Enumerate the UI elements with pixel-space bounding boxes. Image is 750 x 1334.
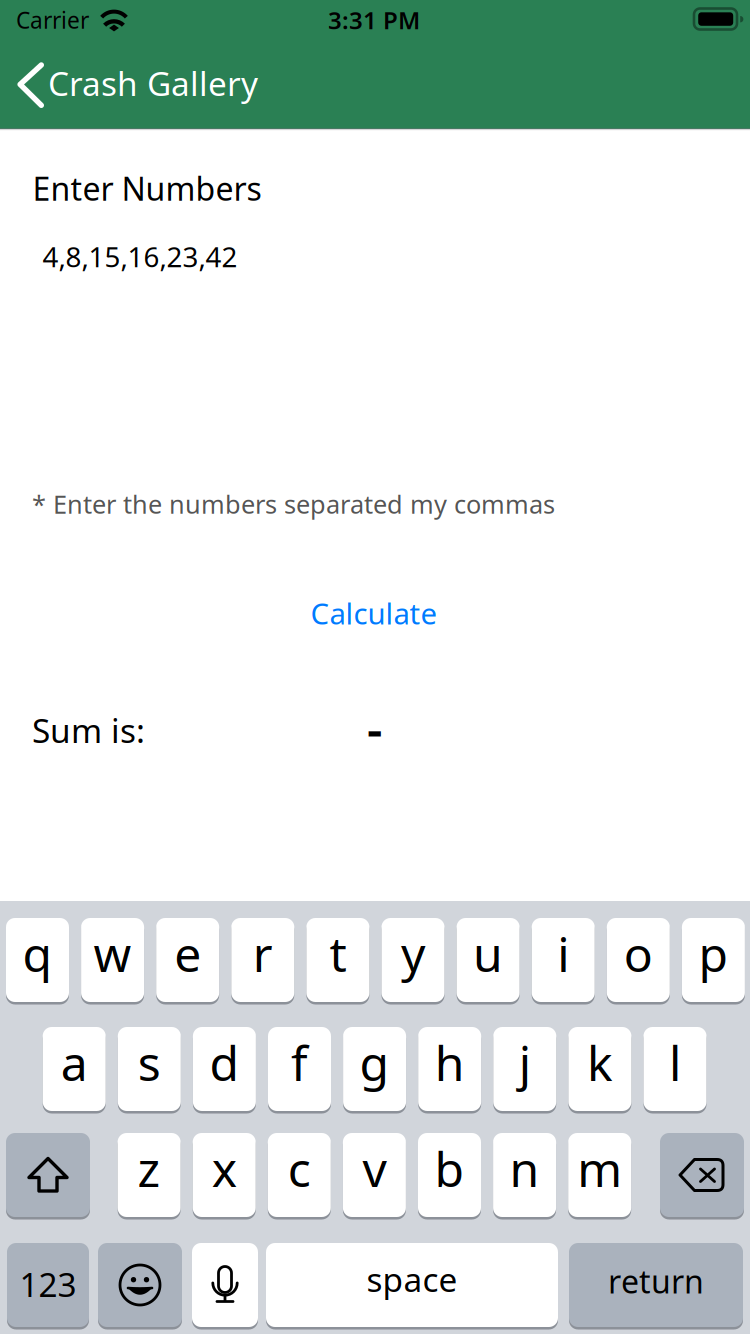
staticText: h	[435, 1031, 465, 1094]
staticText: c	[288, 1137, 311, 1200]
button[interactable]: Crash Gallery	[14, 52, 274, 116]
button[interactable]: g	[343, 1027, 406, 1111]
staticText: e	[174, 922, 201, 985]
button[interactable]: x	[193, 1133, 256, 1217]
staticText: Crash Gallery	[48, 61, 258, 105]
staticText: Sum is:	[32, 708, 145, 752]
button[interactable]: t	[306, 918, 369, 1002]
staticText: s	[138, 1031, 161, 1094]
staticText: -	[367, 697, 382, 761]
staticText: o	[624, 922, 653, 985]
staticText: b	[434, 1137, 464, 1200]
staticText: j	[519, 1031, 531, 1094]
staticText: z	[138, 1137, 161, 1200]
button[interactable]: Delete	[660, 1133, 744, 1217]
staticText: 4,8,15,16,23,42	[42, 237, 237, 275]
button[interactable]: 123	[7, 1243, 89, 1327]
button[interactable]: j	[493, 1027, 556, 1111]
button[interactable]: 4,8,15,16,23,42	[32, 223, 718, 279]
staticText: w	[94, 922, 132, 985]
staticText: g	[360, 1031, 390, 1094]
button[interactable]: o	[607, 918, 670, 1002]
button[interactable]: f	[268, 1027, 331, 1111]
staticText: Calculate	[310, 593, 437, 632]
staticText: space	[366, 1257, 457, 1301]
staticText: m	[577, 1137, 622, 1200]
staticText: r	[253, 922, 273, 985]
button[interactable]: r	[231, 918, 294, 1002]
staticText: i	[557, 922, 569, 985]
button[interactable]: l	[643, 1027, 706, 1111]
staticText: 123	[19, 1262, 76, 1306]
staticText: Carrier	[16, 5, 89, 35]
staticText: k	[587, 1031, 613, 1094]
button[interactable]: space	[266, 1243, 558, 1327]
button[interactable]: h	[418, 1027, 481, 1111]
button[interactable]: return	[569, 1243, 743, 1327]
staticText: n	[510, 1137, 540, 1200]
button[interactable]: z	[118, 1133, 181, 1217]
staticText: d	[209, 1031, 239, 1094]
button[interactable]: Dictation	[192, 1243, 258, 1327]
staticText: 3:31 PM	[328, 4, 420, 36]
staticText: Enter Numbers	[32, 167, 261, 209]
staticText: l	[669, 1031, 681, 1094]
staticText: v	[362, 1137, 386, 1200]
button[interactable]: a	[43, 1027, 106, 1111]
staticText: p	[698, 922, 728, 985]
button[interactable]: w	[81, 918, 144, 1002]
button[interactable]: Emoji keyboard	[98, 1243, 182, 1327]
button[interactable]: s	[118, 1027, 181, 1111]
button[interactable]: m	[568, 1133, 631, 1217]
staticText: x	[212, 1137, 237, 1200]
button[interactable]: Calculate	[274, 589, 474, 637]
staticText: f	[291, 1031, 308, 1094]
staticText: t	[329, 922, 346, 985]
button[interactable]: n	[493, 1133, 556, 1217]
button[interactable]: e	[156, 918, 219, 1002]
button[interactable]: Shift	[6, 1133, 90, 1217]
staticText: * Enter the numbers separated my commas	[32, 487, 555, 521]
button[interactable]: p	[682, 918, 745, 1002]
staticText: return	[608, 1260, 704, 1302]
button[interactable]: i	[532, 918, 595, 1002]
button[interactable]: u	[457, 918, 520, 1002]
button[interactable]: d	[193, 1027, 256, 1111]
button[interactable]: q	[6, 918, 69, 1002]
button[interactable]: y	[381, 918, 444, 1002]
staticText: a	[61, 1031, 88, 1094]
staticText: y	[401, 922, 425, 985]
staticText: q	[22, 922, 52, 985]
button[interactable]: k	[568, 1027, 631, 1111]
button[interactable]: v	[343, 1133, 406, 1217]
button[interactable]: b	[418, 1133, 481, 1217]
staticText: u	[473, 922, 503, 985]
button[interactable]: c	[268, 1133, 331, 1217]
